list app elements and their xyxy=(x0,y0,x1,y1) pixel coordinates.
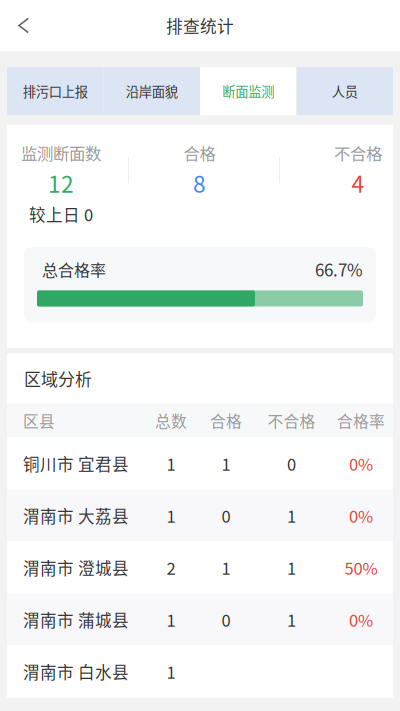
staticText: 0 xyxy=(221,503,230,527)
staticText: 0 xyxy=(221,607,230,631)
staticText: 沿岸面貌 xyxy=(126,81,178,101)
staticText: 1 xyxy=(166,659,175,683)
staticText: 区县 xyxy=(23,409,55,432)
staticText: 合格率 xyxy=(337,409,385,432)
button[interactable]: 渭南市 白水县 xyxy=(7,645,393,697)
button[interactable]: Back xyxy=(0,1,43,49)
staticText: 总合格率 xyxy=(42,258,106,281)
staticText: 0% xyxy=(349,607,373,631)
staticText: 50% xyxy=(344,555,377,579)
staticText: 1 xyxy=(221,451,230,475)
staticText: 合格 xyxy=(183,141,215,164)
staticText: 66.7% xyxy=(315,257,363,281)
staticText: 不合格 xyxy=(267,409,315,432)
staticText: 合格 xyxy=(210,409,242,432)
staticText: 监测断面数 xyxy=(21,141,101,164)
button[interactable]: 渭南市 蒲城县 xyxy=(7,593,393,645)
staticText: 1 xyxy=(287,607,296,631)
button[interactable]: 人员 xyxy=(296,67,393,115)
staticText: 总数 xyxy=(155,409,187,432)
staticText: 1 xyxy=(166,607,175,631)
staticText: 渭南市 澄城县 xyxy=(23,555,129,579)
button[interactable]: 沿岸面貌 xyxy=(103,67,200,115)
button[interactable]: 断面监测 xyxy=(200,67,296,115)
staticText: 较上日 0 xyxy=(29,202,93,226)
button[interactable]: 渭南市 大荔县 xyxy=(7,489,393,541)
staticText: 2 xyxy=(166,555,175,579)
button[interactable]: 渭南市 澄城县 xyxy=(7,541,393,593)
staticText: 4 xyxy=(351,166,364,199)
staticText: 1 xyxy=(166,503,175,527)
button[interactable]: 排污口上报 xyxy=(7,67,103,115)
staticText: 1 xyxy=(166,451,175,475)
staticText: 排污口上报 xyxy=(23,81,88,101)
staticText: 8 xyxy=(193,166,206,199)
staticText: 0% xyxy=(349,503,373,527)
staticText: 渭南市 蒲城县 xyxy=(23,607,129,631)
staticText: 渭南市 白水县 xyxy=(23,659,129,683)
staticText: 人员 xyxy=(332,81,358,101)
staticText: 1 xyxy=(287,555,296,579)
staticText: 0 xyxy=(287,451,296,475)
staticText: 区域分析 xyxy=(24,366,92,391)
staticText: 0% xyxy=(349,451,373,475)
staticText: 断面监测 xyxy=(222,81,274,101)
staticText: 不合格 xyxy=(334,141,382,164)
staticText: 铜川市 宜君县 xyxy=(23,451,129,475)
staticText: 排查统计 xyxy=(166,13,234,37)
staticText: 12 xyxy=(48,166,74,199)
button[interactable]: 铜川市 宜君县 xyxy=(7,437,393,489)
staticText: 1 xyxy=(287,503,296,527)
staticText: 1 xyxy=(221,555,230,579)
staticText: 渭南市 大荔县 xyxy=(23,503,129,527)
